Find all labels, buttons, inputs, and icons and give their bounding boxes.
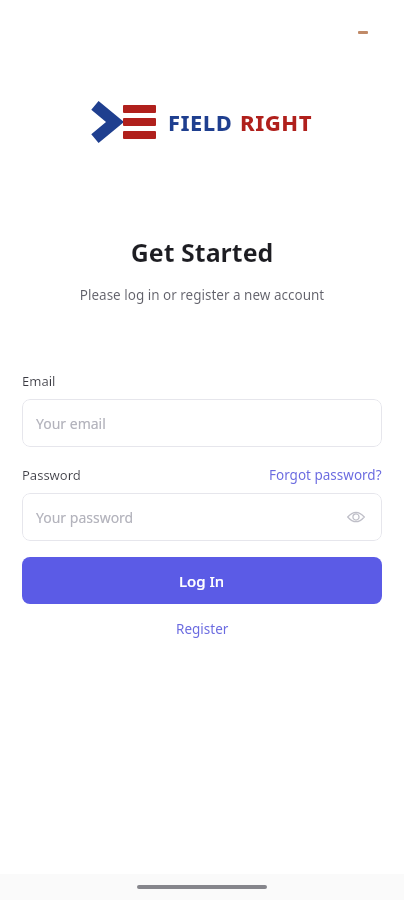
staticText: Please log in or register a new account <box>0 286 404 304</box>
staticText: Forgot password? <box>269 466 382 484</box>
button[interactable]: Log In <box>22 557 382 604</box>
staticText: Log In <box>179 571 225 591</box>
staticText: Password <box>22 466 81 484</box>
button[interactable]: Your email <box>22 399 382 447</box>
button[interactable]: Show password <box>344 505 368 529</box>
button[interactable]: Register <box>168 618 237 640</box>
staticText: FIELD <box>168 107 233 137</box>
staticText: Your email <box>36 414 106 433</box>
button[interactable]: Your password <box>22 493 382 541</box>
staticText: Register <box>176 620 229 638</box>
staticText: Your password <box>36 508 134 527</box>
staticText: Get Started <box>0 235 404 269</box>
staticText: Email <box>22 372 56 390</box>
staticText: RIGHT <box>240 107 312 137</box>
button[interactable]: Forgot password? <box>269 466 382 484</box>
